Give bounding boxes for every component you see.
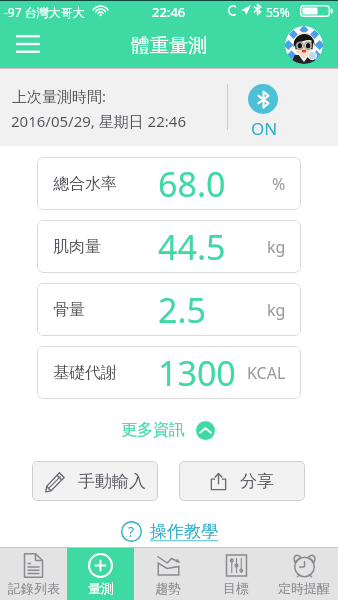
button[interactable]: 目標 (202, 548, 270, 600)
staticText: kg (267, 236, 286, 258)
button[interactable]: Bluetooth (248, 84, 278, 114)
button[interactable]: ? (121, 521, 218, 542)
staticText: 2016/05/29, 星期日 22:46 (11, 111, 186, 131)
button[interactable]: 肌肉量 (37, 220, 301, 273)
button[interactable]: 骨量 (37, 283, 301, 336)
staticText: 骨量 (53, 300, 85, 320)
staticText: 量測 (88, 580, 114, 596)
button[interactable]: 更多資訊 (121, 420, 215, 440)
staticText: 1300 (158, 350, 236, 396)
button[interactable]: 記錄列表 (0, 548, 67, 600)
button[interactable]: Manual input (32, 461, 158, 501)
staticText: ON (251, 117, 278, 140)
staticText: 總合水率 (53, 174, 117, 194)
staticText: -97 台灣大哥大 (4, 4, 85, 20)
staticText: 操作教學 (150, 521, 218, 542)
staticText: 手動輸入 (78, 471, 146, 492)
staticText: 68.0 (158, 161, 226, 207)
button[interactable]: 基礎代謝 (37, 346, 301, 399)
button[interactable]: Menu (8, 24, 48, 64)
button[interactable]: 量測 (67, 548, 134, 600)
staticText: 肌肉量 (53, 237, 101, 257)
staticText: 趨勢 (155, 580, 181, 596)
staticText: 2.5 (158, 287, 207, 333)
staticText: 上次量測時間: (12, 86, 107, 106)
staticText: 體重量測 (131, 34, 207, 58)
staticText: 記錄列表 (8, 580, 60, 596)
staticText: 22:46 (152, 3, 186, 21)
staticText: KCAL (247, 362, 286, 384)
staticText: 更多資訊 (121, 420, 185, 440)
staticText: kg (267, 299, 286, 321)
staticText: 44.5 (158, 224, 226, 270)
button[interactable]: 定時提醒 (270, 548, 338, 600)
button[interactable]: Share (179, 461, 305, 501)
staticText: 基礎代謝 (53, 363, 117, 383)
staticText: % (272, 173, 286, 195)
staticText: ? (128, 522, 135, 541)
button[interactable]: Profile (285, 26, 323, 64)
staticText: 目標 (223, 580, 249, 596)
staticText: 55% (266, 4, 290, 20)
staticText: 定時提醒 (278, 580, 330, 596)
button[interactable]: 趨勢 (134, 548, 202, 600)
staticText: 分享 (240, 471, 274, 492)
button[interactable]: 總合水率 (37, 157, 301, 210)
